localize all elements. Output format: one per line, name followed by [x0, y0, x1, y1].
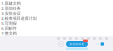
button[interactable]: Send [101, 42, 104, 46]
button[interactable]: Bulleted list [75, 37, 78, 40]
button[interactable]: Insert link [99, 37, 102, 40]
button[interactable]: 5. [0, 21, 113, 26]
staticText: 添加任务 [5, 6, 21, 11]
button[interactable]: 3. [0, 11, 113, 16]
staticText: 6. [1, 26, 4, 31]
staticText: 3. [1, 11, 4, 16]
button[interactable]: Italic [63, 37, 66, 40]
button[interactable]: 7. [0, 31, 113, 36]
staticText: 整文档 [5, 31, 17, 36]
button[interactable]: Numbered list [81, 37, 84, 40]
staticText: 发送给好友 [69, 42, 84, 46]
button[interactable]: Emoji [58, 41, 63, 46]
button[interactable]: 发送给好友 [66, 41, 88, 47]
button[interactable]: 4. [0, 16, 113, 21]
button[interactable]: 1. [0, 1, 113, 6]
button[interactable]: 6. [0, 26, 113, 31]
staticText: 写周报 [5, 21, 17, 26]
button[interactable]: 2. [0, 6, 113, 11]
button[interactable]: Bold [57, 37, 60, 40]
staticText: 回邮件 [5, 26, 17, 31]
staticText: 安排会议 [5, 11, 21, 16]
staticText: 新建文档 [5, 1, 21, 6]
button[interactable]: Underline [69, 37, 72, 40]
staticText: 2. [1, 6, 4, 11]
staticText: 检查项目进度计划 [5, 16, 37, 21]
staticText: 5. [1, 21, 4, 26]
button[interactable]: Insert image [93, 37, 96, 40]
button[interactable]: Checklist [87, 37, 90, 40]
staticText: 4. [1, 16, 4, 21]
staticText: 7. [1, 31, 4, 36]
staticText: 1. [1, 1, 4, 6]
button[interactable]: More [105, 37, 108, 40]
